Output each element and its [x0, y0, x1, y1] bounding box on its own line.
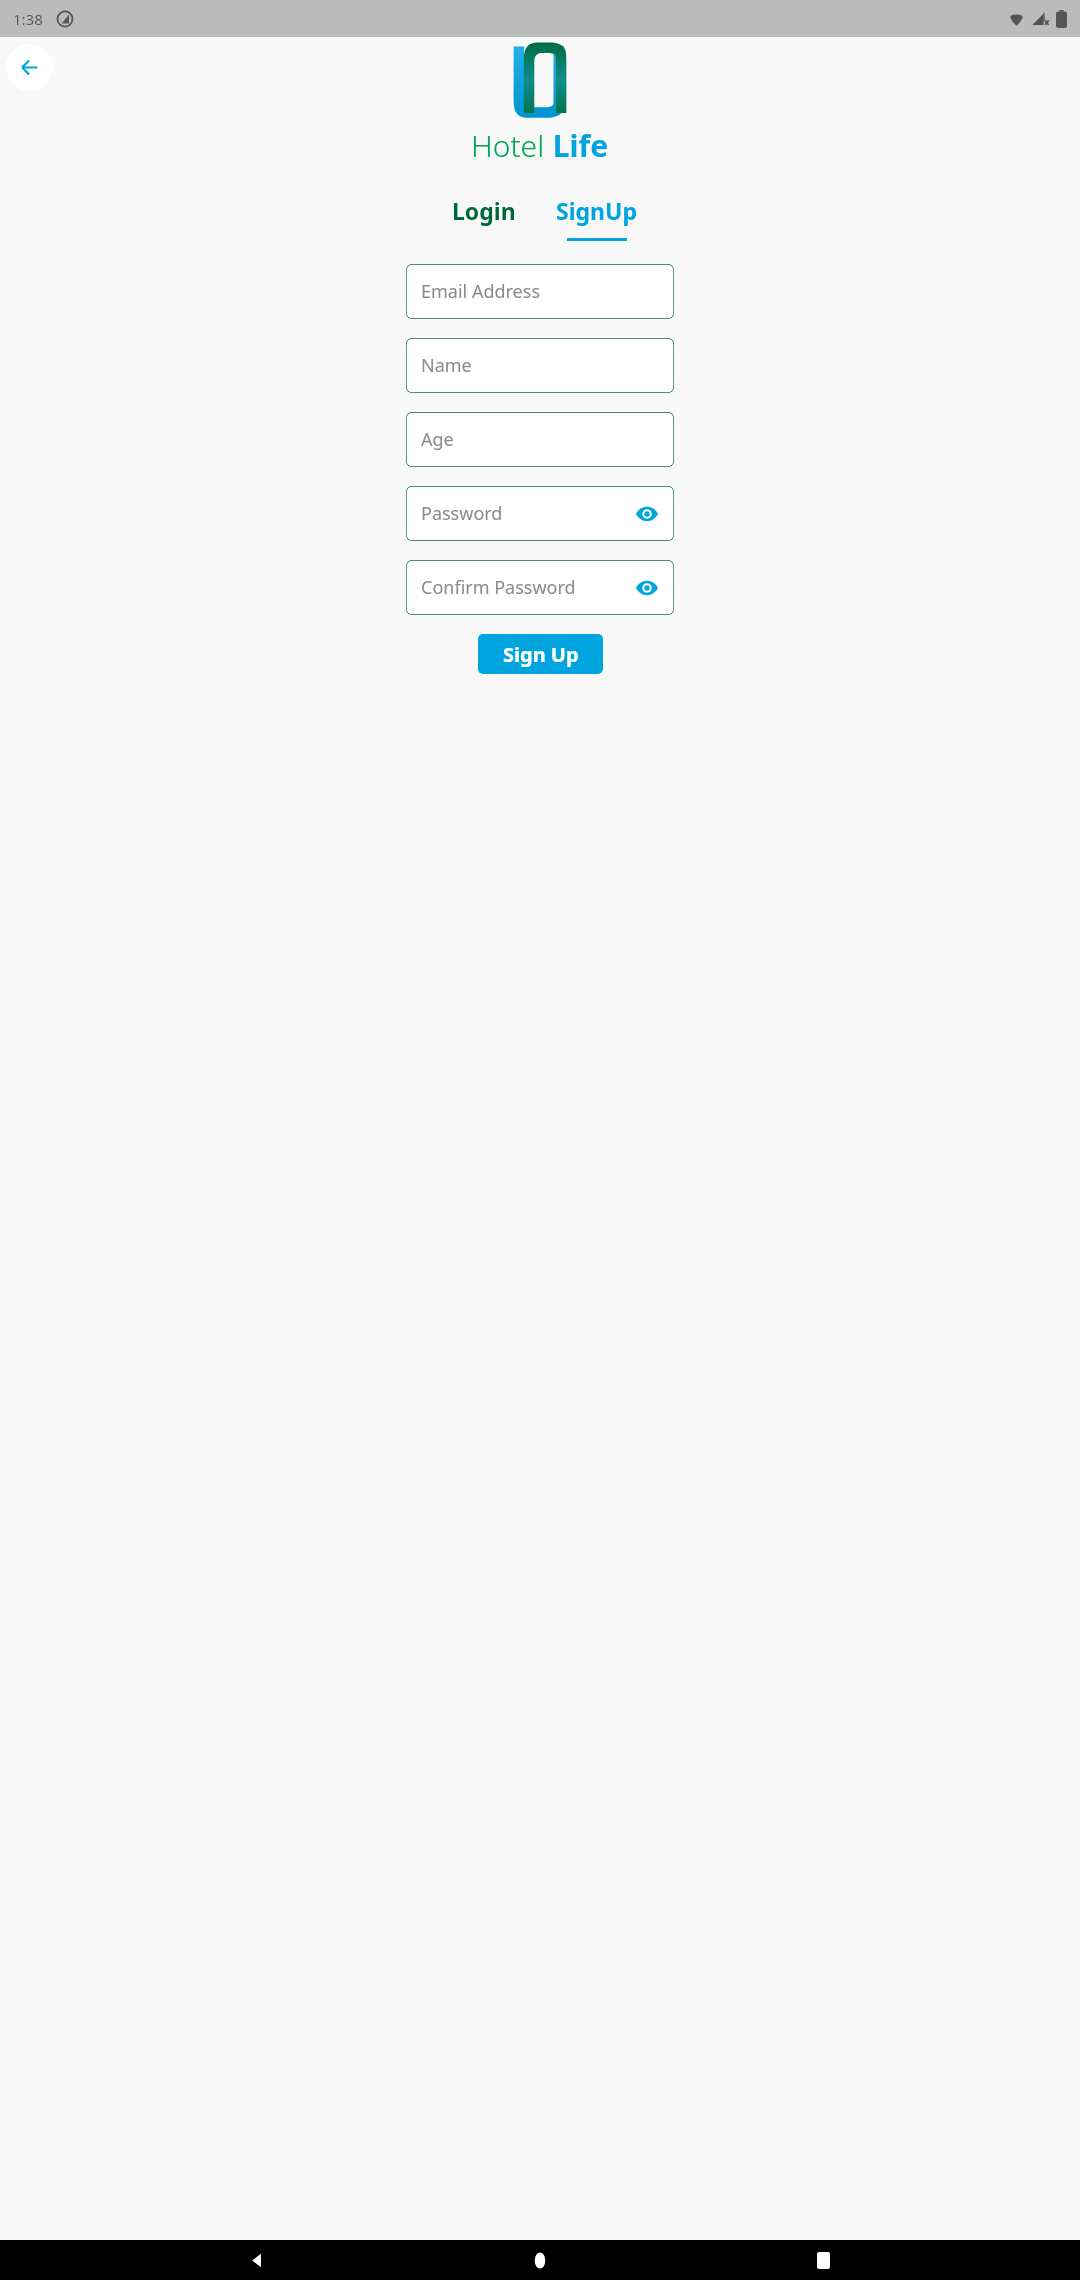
button[interactable]: Home [514, 2240, 566, 2280]
staticText: Email Address [421, 279, 541, 304]
button[interactable]: Back [231, 2240, 283, 2280]
button[interactable]: Email Address [406, 264, 674, 319]
button[interactable]: Age [406, 412, 674, 467]
staticText: Sign Up [503, 641, 579, 668]
staticText: Login [452, 195, 516, 226]
staticText: Password [421, 501, 503, 526]
staticText: Life [545, 125, 609, 166]
button[interactable]: Recent apps [797, 2240, 849, 2280]
staticText: Age [421, 427, 454, 452]
staticText: Hotel [471, 125, 545, 166]
button[interactable]: Name [406, 338, 674, 393]
staticText: Confirm Password [421, 575, 576, 600]
button[interactable]: Show password [632, 499, 662, 529]
button[interactable]: Show password [632, 573, 662, 603]
staticText: Name [421, 353, 472, 378]
staticText: SignUp [556, 195, 637, 226]
button[interactable]: Sign Up [478, 634, 603, 674]
button[interactable]: SignUp [544, 195, 649, 241]
button[interactable]: Back [6, 44, 53, 91]
staticText: 1:38 [13, 9, 43, 29]
button[interactable]: Password [406, 486, 674, 541]
button[interactable]: Login [431, 195, 536, 241]
button[interactable]: Confirm Password [406, 560, 674, 615]
